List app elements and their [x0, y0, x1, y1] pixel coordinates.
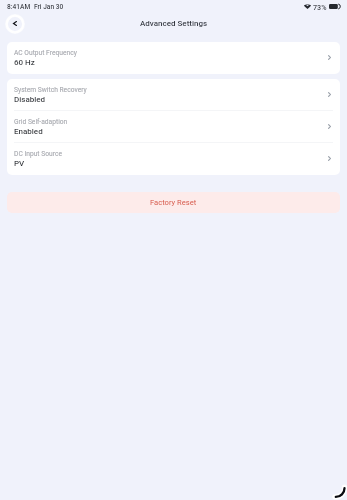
staticText: Fri Jan 30: [34, 3, 64, 11]
staticText: System Switch Recovery: [14, 86, 87, 94]
button[interactable]: Factory Reset: [7, 192, 340, 213]
staticText: 73%: [313, 3, 327, 11]
staticText: AC Output Frequency: [14, 49, 77, 57]
button[interactable]: Grid Self-adaption: [7, 111, 340, 143]
staticText: Grid Self-adaption: [14, 118, 68, 126]
button[interactable]: DC Input Source: [7, 143, 340, 175]
staticText: 60 Hz: [14, 58, 35, 67]
staticText: DC Input Source: [14, 150, 62, 158]
button[interactable]: Back: [5, 14, 25, 34]
staticText: Disabled: [14, 95, 46, 104]
staticText: Factory Reset: [150, 198, 197, 207]
staticText: 8:41AM: [7, 3, 31, 11]
button[interactable]: AC Output Frequency: [7, 42, 340, 74]
button[interactable]: System Switch Recovery: [7, 79, 340, 111]
staticText: Enabled: [14, 127, 43, 136]
staticText: Advanced Settings: [140, 19, 208, 28]
staticText: PV: [14, 159, 25, 168]
